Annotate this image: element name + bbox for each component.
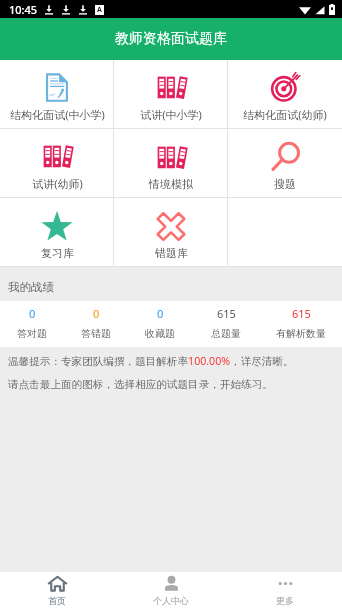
button[interactable]: More [228,572,342,608]
button[interactable]: 试讲(中小学) [114,60,228,128]
staticText: 10:45 [9,2,38,17]
button[interactable]: 错题库 [114,198,228,266]
button[interactable]: 0 [128,301,192,347]
staticText: 首页 [48,595,66,606]
staticText: 0 [93,306,100,321]
staticText: 试讲(幼师) [32,176,83,191]
staticText: 0 [29,306,36,321]
staticText: 教师资格面试题库 [115,30,227,48]
staticText: 更多 [276,595,294,606]
staticText: 收藏题 [145,327,175,340]
button[interactable]: 搜题 [228,129,342,197]
staticText: 温馨提示：专家团队编撰，题目解析率100.00%，详尽清晰。 [8,354,294,368]
staticText: 有解析数量 [276,327,326,340]
button[interactable]: 615 [192,301,260,347]
staticText: 请点击最上面的图标，选择相应的试题目录，开始练习。 [8,378,273,391]
button[interactable]: 结构化面试(中小学) [0,60,114,128]
staticText: 0 [157,306,164,321]
staticText: 答错题 [81,327,111,340]
staticText: 我的战绩 [8,280,54,294]
staticText: 总题量 [211,327,241,340]
button[interactable]: 结构化面试(幼师) [228,60,342,128]
staticText: 答对题 [17,327,47,340]
button[interactable]: Home [0,572,114,608]
staticText: A [97,5,102,15]
staticText: 错题库 [155,246,188,260]
button[interactable]: 0 [64,301,128,347]
staticText: 结构化面试(中小学) [10,107,105,122]
staticText: 个人中心 [153,595,189,606]
staticText: 复习库 [41,246,74,260]
staticText: 试讲(中小学) [140,107,202,122]
staticText: 情境模拟 [149,177,193,191]
button[interactable]: 情境模拟 [114,129,228,197]
staticText: 搜题 [274,177,296,191]
button[interactable]: 0 [0,301,64,347]
staticText: 615 [217,306,236,321]
staticText: 615 [292,306,311,321]
button[interactable]: Profile [114,572,228,608]
staticText: 结构化面试(幼师) [243,107,327,122]
button[interactable]: 试讲(幼师) [0,129,114,197]
button[interactable]: 615 [260,301,342,347]
button[interactable]: 复习库 [0,198,114,266]
